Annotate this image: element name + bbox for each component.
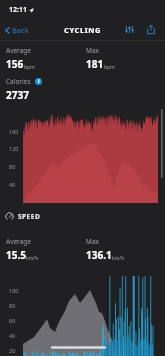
- staticText: bpm: [104, 64, 115, 71]
- staticText: bpm: [24, 64, 35, 71]
- staticText: SPEED: [18, 212, 41, 221]
- button[interactable]: Share: [144, 23, 157, 36]
- staticText: 40: [9, 181, 16, 188]
- button[interactable]: Info: [35, 78, 42, 85]
- staticText: 136.1: [86, 248, 112, 262]
- staticText: km/h: [112, 255, 125, 262]
- staticText: Max: [86, 237, 99, 246]
- staticText: Average: [6, 46, 31, 55]
- button[interactable]: Back: [3, 25, 30, 35]
- staticText: 160: [9, 128, 19, 135]
- staticText: 100: [9, 287, 19, 294]
- staticText: 156: [6, 57, 24, 71]
- staticText: 120: [9, 145, 19, 152]
- staticText: 2737: [6, 88, 29, 102]
- staticText: 181: [86, 57, 104, 71]
- staticText: Calories: [6, 77, 31, 86]
- staticText: 60: [9, 317, 16, 324]
- staticText: km/h: [26, 255, 39, 262]
- staticText: Average: [6, 237, 31, 246]
- staticText: i: [38, 78, 40, 85]
- staticText: 15.5: [6, 248, 26, 262]
- staticText: 80: [9, 163, 16, 170]
- staticText: 40: [9, 332, 16, 339]
- staticText: Back: [12, 25, 29, 35]
- button[interactable]: Laps: [123, 23, 136, 36]
- staticText: Max: [86, 46, 99, 55]
- staticText: 20: [9, 347, 16, 354]
- staticText: 12:11: [9, 5, 27, 15]
- staticText: CYCLING: [64, 25, 102, 35]
- staticText: 80: [9, 302, 16, 309]
